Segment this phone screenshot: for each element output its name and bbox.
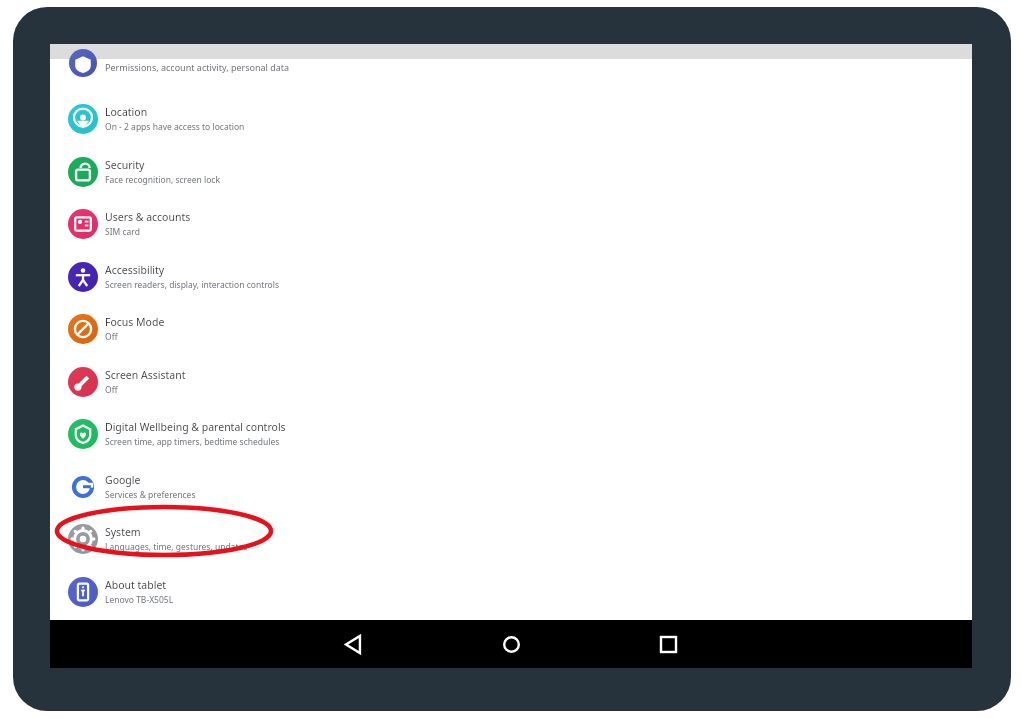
button[interactable]: About tablet [50,566,972,618]
button[interactable]: System [50,513,972,565]
staticText: Lenovo TB-X505L [105,594,174,606]
staticText: Accessibility [105,263,165,277]
staticText: Languages, time, gestures, updates [105,541,248,553]
staticText: Off [105,331,118,343]
staticText: Off [105,384,118,396]
staticText: Digital Wellbeing & parental controls [105,420,286,434]
staticText: Users & accounts [105,210,191,224]
staticText: Screen time, app timers, bedtime schedul… [105,436,280,448]
staticText: Screen Assistant [105,368,186,382]
staticText: System [105,525,141,539]
staticText: Permissions, account activity, personal … [105,61,290,73]
button[interactable]: Location [50,93,972,145]
button[interactable]: Google [50,461,972,513]
staticText: Services & preferences [105,489,196,501]
button[interactable]: Recent apps [644,620,692,668]
staticText: Screen readers, display, interaction con… [105,279,279,291]
button[interactable]: Security [50,146,972,198]
staticText: Security [105,158,145,172]
staticText: About tablet [105,578,167,592]
button[interactable]: Back [330,620,378,668]
staticText: On - 2 apps have access to location [105,121,245,133]
button[interactable]: Accessibility [50,251,972,303]
staticText: Location [105,105,148,119]
button[interactable]: Focus Mode [50,303,972,355]
button[interactable]: Digital Wellbeing & parental controls [50,408,972,460]
button[interactable]: Users & accounts [50,198,972,250]
button[interactable]: Home [487,620,535,668]
staticText: Google [105,473,141,487]
staticText: SIM card [105,226,140,238]
staticText: Focus Mode [105,315,165,329]
staticText: Face recognition, screen lock [105,174,220,186]
button[interactable]: Permissions, account activity, personal … [50,59,972,87]
button[interactable]: Screen Assistant [50,356,972,408]
